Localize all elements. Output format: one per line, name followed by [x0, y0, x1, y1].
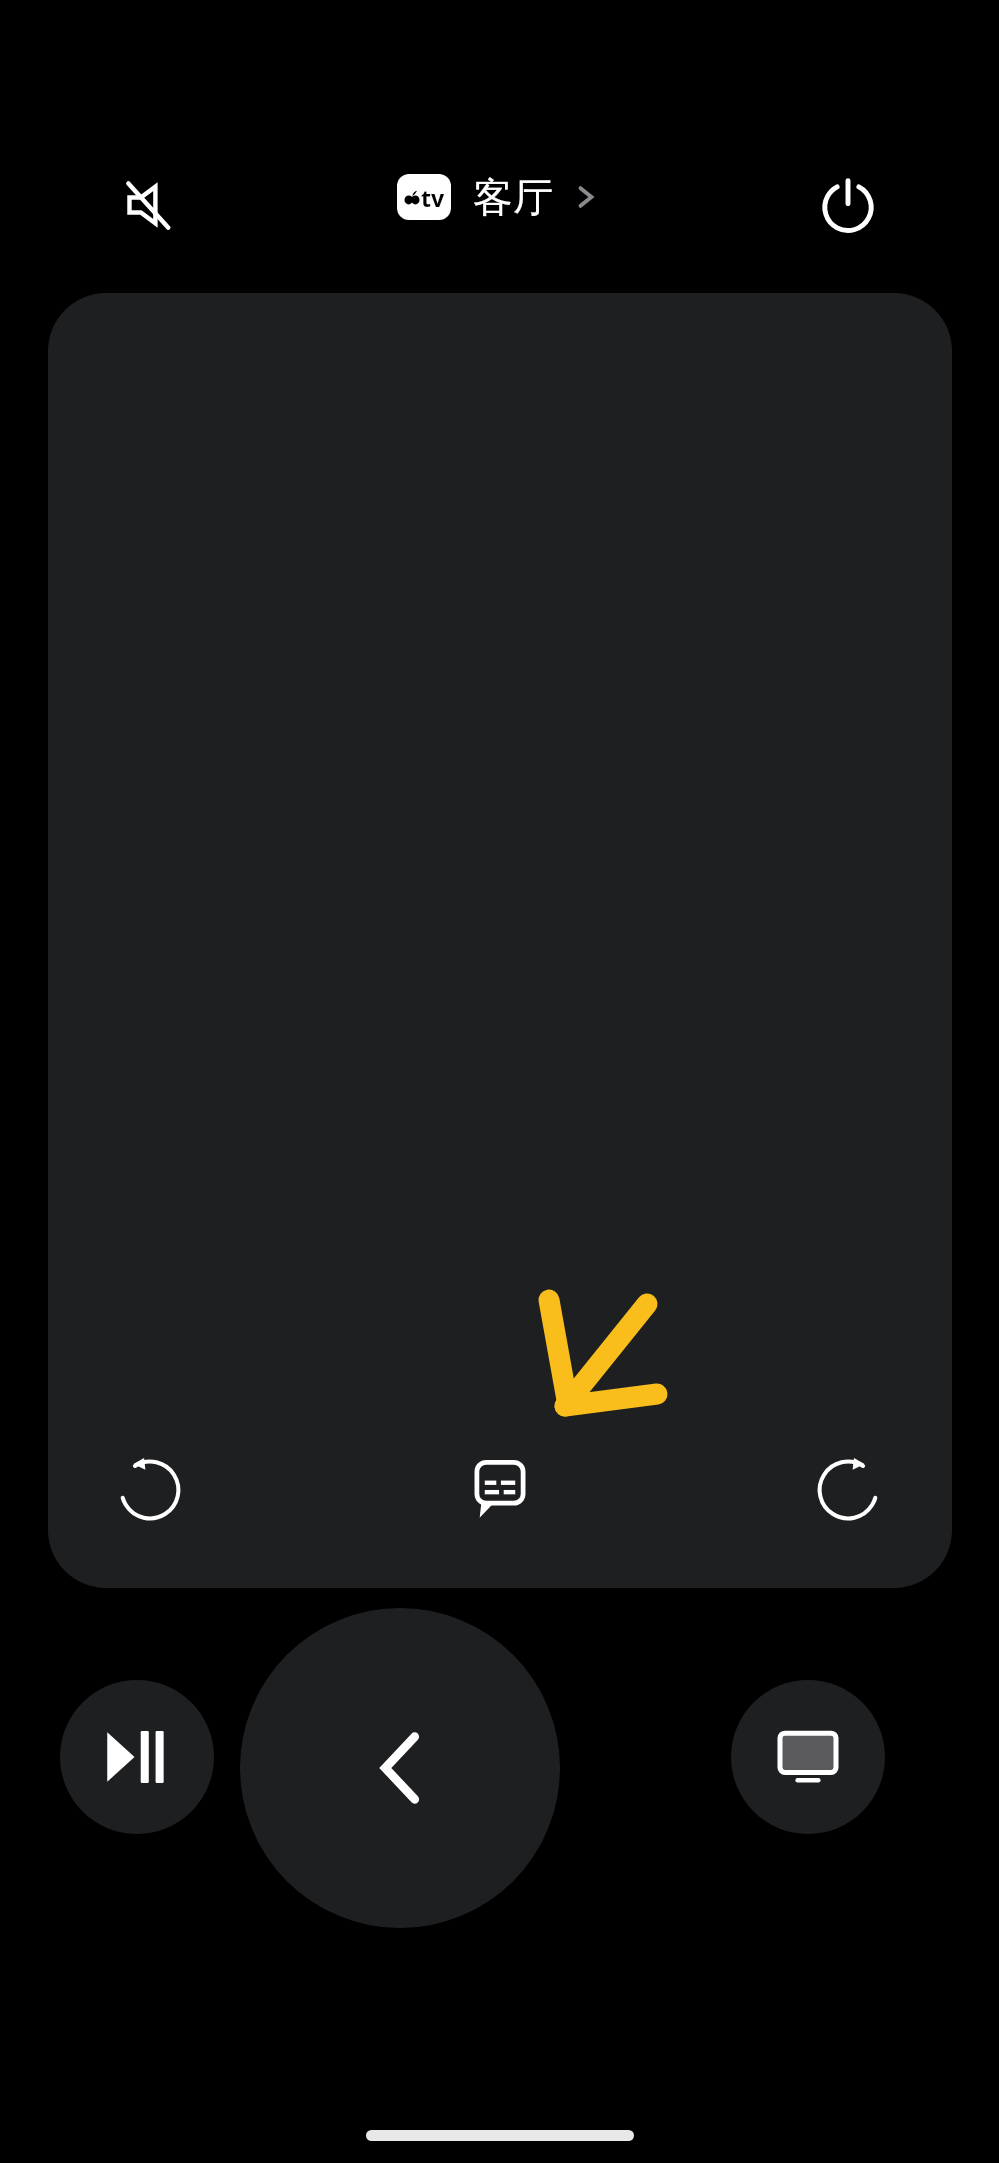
staticText: tv [421, 182, 445, 213]
button[interactable]: Play or pause [60, 1680, 214, 1834]
button[interactable]: Back [240, 1608, 560, 1928]
button[interactable]: Mute [108, 163, 192, 247]
button[interactable]: Subtitles [458, 1448, 542, 1532]
button[interactable]: Skip back 10 seconds [108, 1448, 192, 1532]
button[interactable]: Power [806, 163, 890, 247]
staticText: 客厅 [473, 172, 553, 222]
button[interactable]: Touchpad [48, 293, 952, 1588]
button[interactable]: tv [397, 172, 603, 222]
button[interactable]: Skip forward 10 seconds [806, 1448, 890, 1532]
button[interactable]: TV [731, 1680, 885, 1834]
